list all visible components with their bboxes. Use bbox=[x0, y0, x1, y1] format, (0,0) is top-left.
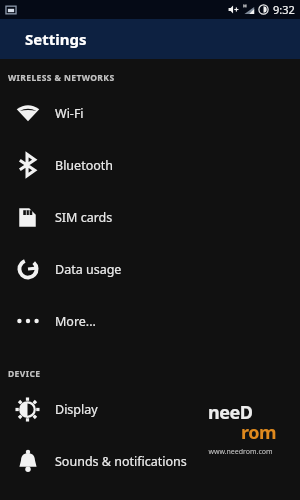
other: Sounds bbox=[0, 435, 55, 487]
staticText: 9:32 bbox=[273, 2, 295, 17]
other: Bluetooth bbox=[0, 139, 55, 191]
staticText: Settings bbox=[25, 29, 87, 49]
button[interactable]: Sounds bbox=[0, 435, 300, 487]
button[interactable]: Display bbox=[0, 383, 300, 435]
staticText: Display bbox=[55, 401, 98, 418]
button[interactable]: SIM cards bbox=[0, 191, 300, 243]
staticText: Bluetooth bbox=[55, 157, 114, 174]
staticText: WIRELESS & NETWORKS bbox=[8, 72, 115, 84]
other: Data usage bbox=[0, 243, 55, 295]
staticText: More... bbox=[55, 313, 96, 330]
staticText: Sounds & notifications bbox=[55, 453, 187, 470]
staticText: www.needrom.com bbox=[208, 447, 273, 457]
staticText: rom bbox=[241, 420, 276, 445]
button[interactable]: Data usage bbox=[0, 243, 300, 295]
other: More bbox=[0, 295, 55, 347]
staticText: DEVICE bbox=[8, 368, 41, 380]
staticText: SIM cards bbox=[55, 209, 113, 226]
staticText: neeD bbox=[208, 400, 253, 425]
staticText: Wi-Fi bbox=[55, 105, 84, 122]
button[interactable]: Bluetooth bbox=[0, 139, 300, 191]
other: Wi-Fi bbox=[0, 87, 55, 139]
button[interactable]: More bbox=[0, 295, 300, 347]
other: SIM cards bbox=[0, 191, 55, 243]
button[interactable]: Wi-Fi bbox=[0, 87, 300, 139]
staticText: Data usage bbox=[55, 261, 122, 278]
other: Display bbox=[0, 383, 55, 435]
